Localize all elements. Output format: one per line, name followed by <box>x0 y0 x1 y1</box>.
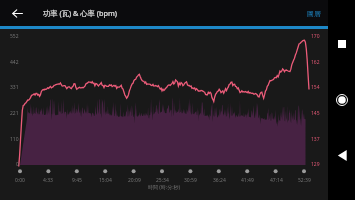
staticText: 552 <box>10 33 19 40</box>
staticText: 15:04 <box>99 177 112 184</box>
button[interactable]: Recents <box>334 36 350 52</box>
staticText: 137 <box>311 136 320 143</box>
staticText: 162 <box>311 59 320 66</box>
staticText: 442 <box>10 59 19 66</box>
button[interactable]: Back <box>5 1 29 25</box>
staticText: 129 <box>311 161 320 168</box>
staticText: 331 <box>10 84 19 91</box>
staticText: 221 <box>10 110 19 117</box>
button[interactable]: Home <box>334 92 350 108</box>
staticText: 9:45 <box>72 177 82 184</box>
staticText: 時間 (時:分:秒) <box>148 184 180 191</box>
staticText: 170 <box>311 33 320 40</box>
staticText: 20:09 <box>128 177 141 184</box>
button[interactable]: 圖層 <box>300 5 328 22</box>
staticText: 0:00 <box>15 177 25 184</box>
staticText: 0 <box>16 161 19 168</box>
button[interactable]: Back <box>334 147 350 163</box>
staticText: 30:59 <box>184 177 197 184</box>
staticText: 36:24 <box>213 177 226 184</box>
staticText: 52:39 <box>298 177 311 184</box>
staticText: 4:33 <box>43 177 53 184</box>
staticText: 功率 (瓦) & 心率 (bpm) <box>43 8 117 18</box>
staticText: 145 <box>311 110 320 117</box>
staticText: 41:49 <box>241 177 254 184</box>
staticText: 25:34 <box>156 177 169 184</box>
staticText: 154 <box>311 84 320 91</box>
staticText: 47:14 <box>270 177 283 184</box>
staticText: 圖層 <box>307 9 321 18</box>
staticText: 110 <box>10 136 19 143</box>
